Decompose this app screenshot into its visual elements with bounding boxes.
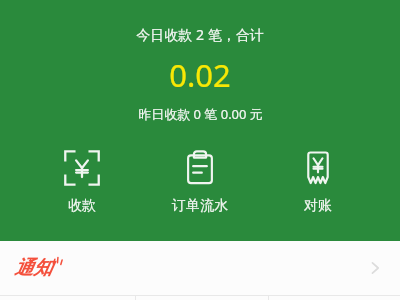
staticText: 对账 <box>304 197 332 215</box>
staticText: 收款 <box>68 197 96 215</box>
staticText: 0.02 <box>169 54 231 96</box>
staticText: 昨日收款 0 笔 0.00 元 <box>138 105 263 123</box>
staticText: 订单流水 <box>172 197 228 215</box>
staticText: 今日收款 2 笔，合计 <box>136 25 264 44</box>
button[interactable]: 订单流水 <box>156 145 244 217</box>
button[interactable]: Open notifications <box>364 257 386 279</box>
button[interactable]: 通知 <box>0 241 400 295</box>
button[interactable]: 收款 <box>45 145 119 217</box>
button[interactable]: 对账 <box>281 145 355 217</box>
staticText: 通知 <box>14 256 52 280</box>
